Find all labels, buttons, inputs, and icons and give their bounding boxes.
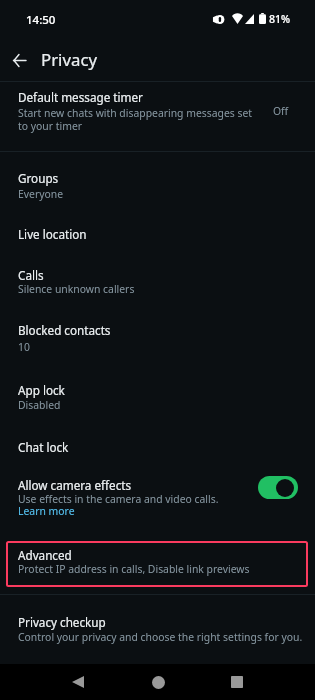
button[interactable]: Back <box>3 44 35 76</box>
staticText: Learn more <box>18 504 75 518</box>
button[interactable]: Back <box>60 664 96 700</box>
staticText: Use effects in the camera and video call… <box>18 492 219 506</box>
staticText: Live location <box>18 226 87 242</box>
button[interactable]: Recent apps <box>219 664 255 700</box>
button[interactable] <box>6 541 308 587</box>
staticText: Everyone <box>18 187 64 201</box>
staticText: Allow camera effects <box>18 477 132 493</box>
staticText: 10 <box>18 340 30 354</box>
staticText: Calls <box>18 267 44 283</box>
staticText: Control your privacy and choose the righ… <box>18 630 303 644</box>
staticText: Start new chats with disappearing messag… <box>18 106 253 120</box>
button[interactable]: Allow camera effects toggle <box>258 476 298 499</box>
staticText: App lock <box>18 382 65 398</box>
staticText: Protect IP address in calls, Disable lin… <box>18 562 250 576</box>
staticText: Advanced <box>18 547 72 563</box>
staticText: 14:50 <box>26 12 56 28</box>
staticText: Privacy <box>41 48 98 71</box>
staticText: Blocked contacts <box>18 322 111 338</box>
staticText: Off <box>273 104 289 118</box>
staticText: 81% <box>269 12 291 26</box>
staticText: Groups <box>18 170 59 186</box>
button[interactable]: Home <box>140 664 176 700</box>
staticText: Default message timer <box>18 89 143 105</box>
staticText: Disabled <box>18 398 61 412</box>
staticText: Chat lock <box>18 439 69 455</box>
staticText: Silence unknown callers <box>18 282 135 296</box>
staticText: Privacy checkup <box>18 614 106 630</box>
staticText: to your timer <box>18 119 83 133</box>
